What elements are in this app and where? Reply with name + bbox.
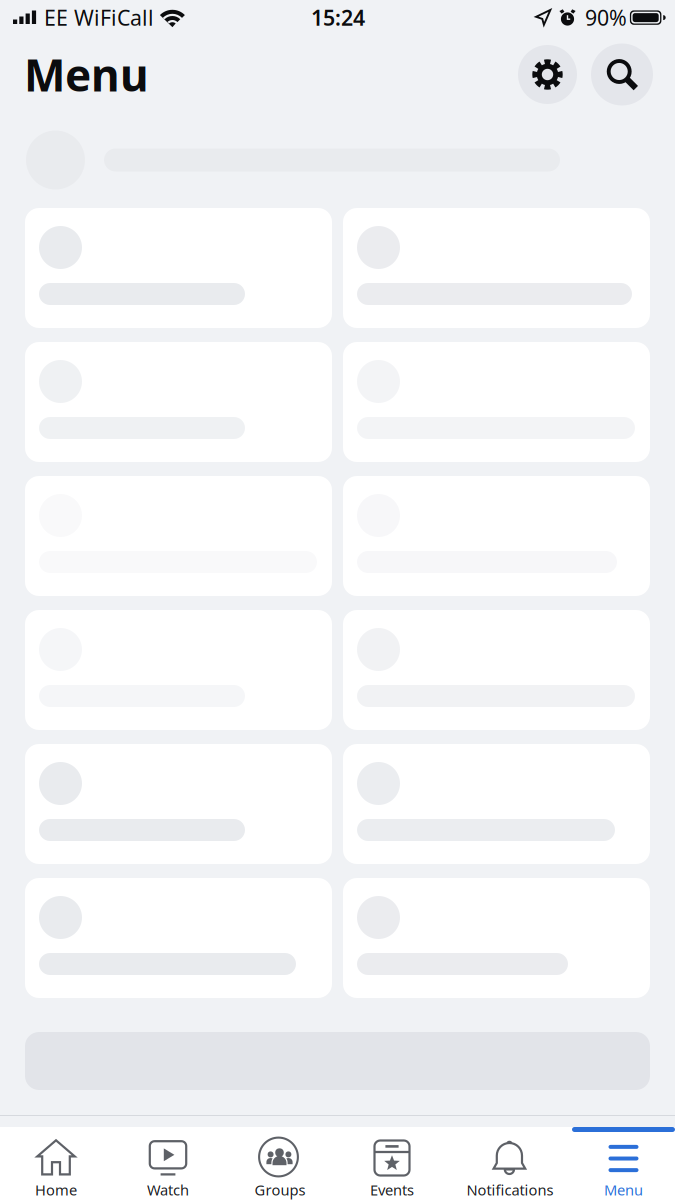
staticText: Events xyxy=(370,1180,414,1199)
button[interactable]: Watch xyxy=(112,1127,224,1200)
button[interactable]: Home xyxy=(0,1127,112,1200)
staticText: Groups xyxy=(254,1180,305,1199)
staticText: Menu xyxy=(24,45,149,104)
button[interactable]: Events xyxy=(336,1127,448,1200)
button[interactable]: Notifications xyxy=(448,1127,572,1200)
staticText: 90% xyxy=(585,3,627,32)
staticText: Notifications xyxy=(466,1180,553,1199)
button[interactable]: Settings xyxy=(518,45,577,104)
staticText: EE WiFiCall xyxy=(44,3,154,32)
staticText: 15:24 xyxy=(311,3,365,32)
staticText: Watch xyxy=(147,1180,189,1199)
staticText: Menu xyxy=(604,1180,643,1199)
staticText: Home xyxy=(35,1180,77,1199)
button[interactable]: Search xyxy=(591,43,653,105)
button[interactable]: Menu xyxy=(572,1127,675,1200)
button[interactable]: Groups xyxy=(224,1127,336,1200)
